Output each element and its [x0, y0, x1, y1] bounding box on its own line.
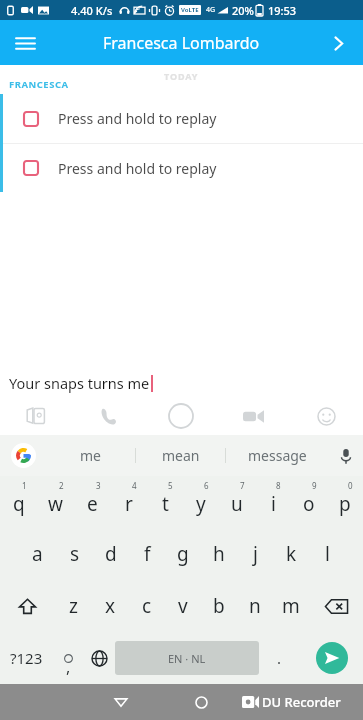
- button[interactable]: 5: [147, 476, 183, 528]
- staticText: p: [339, 491, 351, 517]
- staticText: 0: [348, 480, 353, 491]
- staticText: 4G: [206, 5, 216, 15]
- staticText: t: [162, 491, 169, 517]
- staticText: 5: [168, 480, 173, 491]
- button[interactable]: Send: [300, 632, 363, 684]
- button[interactable]: v: [165, 580, 201, 632]
- staticText: i: [271, 491, 276, 517]
- staticText: y: [196, 491, 206, 517]
- button[interactable]: Next: [319, 24, 357, 62]
- staticText: e: [87, 491, 98, 517]
- button[interactable]: h: [201, 528, 237, 580]
- button[interactable]: 8: [255, 476, 291, 528]
- button[interactable]: Change language: [84, 632, 115, 684]
- staticText: ,: [66, 656, 71, 678]
- staticText: g: [177, 541, 189, 567]
- staticText: 20%: [232, 3, 254, 18]
- button[interactable]: 6: [183, 476, 219, 528]
- button[interactable]: c: [129, 580, 165, 632]
- staticText: TODAY: [164, 70, 199, 82]
- button[interactable]: Press and hold to replay: [3, 144, 363, 192]
- staticText: message: [248, 446, 307, 465]
- staticText: q: [13, 491, 25, 517]
- staticText: VoLTE: [181, 6, 199, 14]
- staticText: Francesca Lombardo: [103, 32, 260, 54]
- button[interactable]: 0: [327, 476, 363, 528]
- button[interactable]: DU Recorder: [242, 684, 363, 720]
- button[interactable]: k: [273, 528, 309, 580]
- staticText: u: [231, 491, 243, 517]
- staticText: Press and hold to replay: [58, 159, 217, 178]
- button[interactable]: Stickers: [290, 397, 363, 435]
- button[interactable]: Camera: [144, 397, 217, 435]
- staticText: m: [282, 593, 300, 619]
- button[interactable]: Emoji comma: [53, 632, 84, 684]
- button[interactable]: Call: [72, 397, 144, 435]
- button[interactable]: 1: [0, 476, 37, 528]
- button[interactable]: Menu: [6, 24, 44, 62]
- button[interactable]: message: [226, 435, 329, 476]
- button[interactable]: Backspace: [309, 580, 363, 632]
- button[interactable]: Video call: [217, 397, 290, 435]
- button[interactable]: d: [93, 528, 129, 580]
- staticText: 2: [59, 480, 64, 491]
- button[interactable]: Shift: [0, 580, 55, 632]
- button[interactable]: .: [259, 632, 300, 684]
- staticText: 4: [132, 480, 137, 491]
- staticText: r: [125, 491, 133, 517]
- button[interactable]: Your snaps turns me: [0, 369, 363, 397]
- staticText: d: [105, 541, 117, 567]
- staticText: FRANCESCA: [9, 78, 69, 91]
- button[interactable]: j: [237, 528, 273, 580]
- staticText: b: [213, 593, 225, 619]
- button[interactable]: Home: [161, 684, 242, 720]
- button[interactable]: ?123: [0, 632, 53, 684]
- button[interactable]: s: [56, 528, 93, 580]
- button[interactable]: l: [309, 528, 345, 580]
- staticText: k: [286, 541, 297, 567]
- button[interactable]: EN · NL: [115, 641, 259, 675]
- button[interactable]: Voice input: [329, 435, 363, 476]
- staticText: .: [277, 648, 282, 668]
- staticText: f: [144, 541, 151, 567]
- button[interactable]: a: [19, 528, 56, 580]
- button[interactable]: 3: [74, 476, 111, 528]
- button[interactable]: n: [237, 580, 273, 632]
- staticText: n: [249, 593, 261, 619]
- staticText: Your snaps turns me: [9, 373, 150, 393]
- button[interactable]: z: [55, 580, 92, 632]
- button[interactable]: mean: [136, 435, 225, 476]
- staticText: h: [213, 541, 225, 567]
- button[interactable]: Back: [80, 684, 161, 720]
- button[interactable]: 9: [291, 476, 327, 528]
- staticText: v: [178, 593, 188, 619]
- button[interactable]: g: [165, 528, 201, 580]
- staticText: 3: [96, 480, 101, 491]
- button[interactable]: Snaps: [0, 397, 72, 435]
- button[interactable]: f: [129, 528, 165, 580]
- staticText: s: [70, 541, 80, 567]
- button[interactable]: 2: [37, 476, 74, 528]
- staticText: 4.40 K/s: [71, 3, 113, 18]
- button[interactable]: x: [92, 580, 129, 632]
- staticText: 8: [276, 480, 281, 491]
- staticText: me: [80, 446, 101, 465]
- staticText: mean: [162, 446, 200, 465]
- button[interactable]: 7: [219, 476, 255, 528]
- button[interactable]: Press and hold to replay: [3, 94, 363, 143]
- staticText: z: [69, 593, 78, 619]
- button[interactable]: me: [46, 435, 135, 476]
- staticText: 7: [240, 480, 245, 491]
- staticText: ?123: [10, 648, 43, 668]
- button[interactable]: Google: [0, 435, 46, 476]
- staticText: 9: [312, 480, 317, 491]
- staticText: a: [32, 541, 43, 567]
- staticText: c: [142, 593, 152, 619]
- staticText: l: [325, 541, 330, 567]
- button[interactable]: m: [273, 580, 309, 632]
- staticText: 1: [22, 480, 27, 491]
- staticText: 19:53: [268, 3, 297, 18]
- button[interactable]: 4: [111, 476, 147, 528]
- staticText: Press and hold to replay: [58, 109, 217, 128]
- button[interactable]: b: [201, 580, 237, 632]
